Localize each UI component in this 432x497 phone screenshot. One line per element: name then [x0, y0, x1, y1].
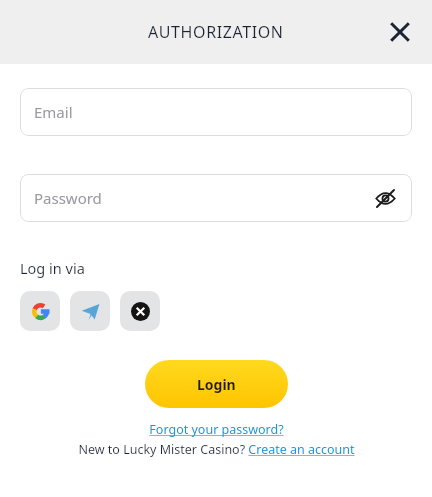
button[interactable]: Email [20, 88, 412, 136]
staticText: Log in via [20, 258, 85, 278]
button[interactable]: Sign in with Google [20, 291, 60, 331]
button[interactable]: Close [382, 14, 418, 50]
button[interactable]: Password [20, 174, 412, 222]
button[interactable]: New to Lucky Mister Casino? Create an ac… [0, 441, 432, 458]
staticText: Login [197, 375, 236, 394]
staticText: Email [34, 102, 73, 122]
staticText: AUTHORIZATION [148, 21, 284, 43]
button[interactable]: Forgot your password? [0, 421, 432, 438]
staticText: Forgot your password? [149, 421, 284, 438]
button[interactable]: Show password [368, 181, 402, 215]
button[interactable]: Sign in with X [120, 291, 160, 331]
button[interactable]: Sign in with Telegram [70, 291, 110, 331]
button[interactable]: Login [145, 360, 288, 408]
staticText: Password [34, 188, 102, 208]
staticText: New to Lucky Mister Casino? Create an ac… [78, 441, 355, 458]
